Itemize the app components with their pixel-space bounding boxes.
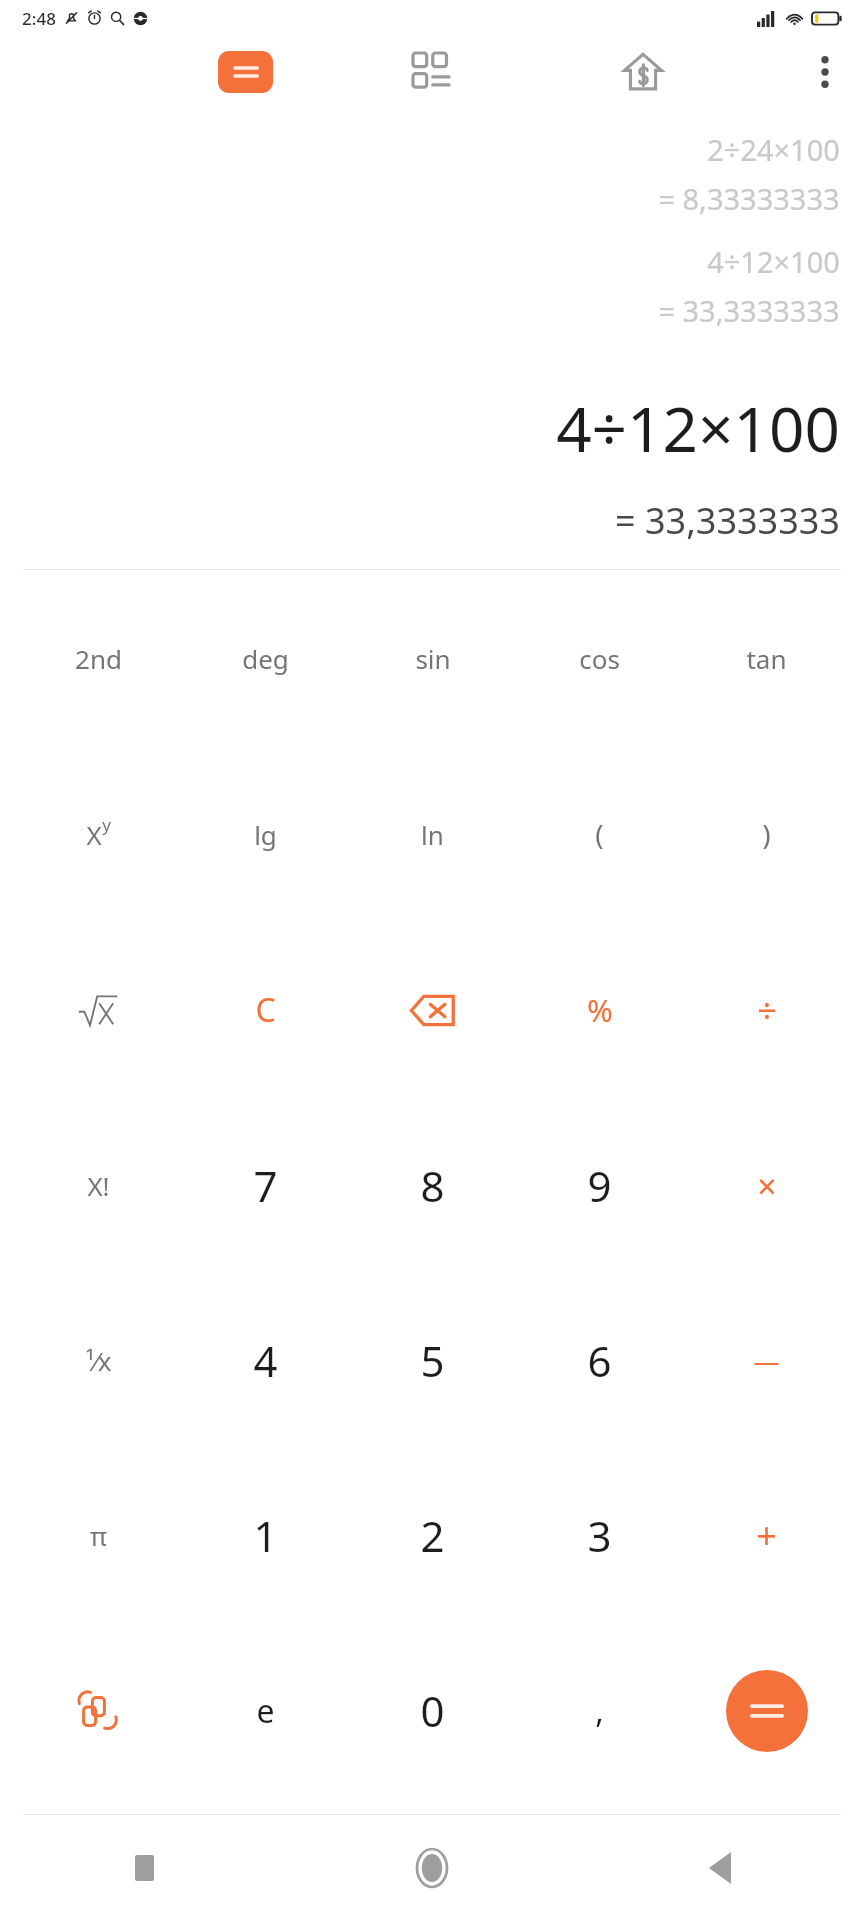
button[interactable]: π [14, 1448, 182, 1623]
staticText: 7 [253, 1157, 278, 1214]
button[interactable]: 6 [516, 1273, 683, 1448]
staticText: + [756, 1511, 777, 1560]
button[interactable]: cos [516, 570, 683, 746]
staticText: , [595, 1689, 604, 1733]
staticText: 5 [420, 1332, 445, 1389]
staticText: 2 [420, 1507, 445, 1564]
staticText: C [255, 988, 276, 1032]
button[interactable]: 5 [349, 1273, 516, 1448]
button[interactable]: Backspace [349, 922, 516, 1098]
button[interactable]: deg [182, 570, 349, 746]
staticText: % [587, 989, 613, 1031]
button[interactable]: ) [683, 746, 850, 922]
staticText: 2nd [75, 641, 122, 676]
button[interactable]: , [516, 1623, 683, 1798]
staticText: cos [579, 641, 620, 676]
staticText: y [102, 813, 111, 836]
staticText: tan [746, 641, 787, 676]
button[interactable]: 8 [349, 1098, 516, 1273]
button[interactable]: Home [288, 1815, 576, 1920]
staticText: — [753, 1343, 780, 1378]
button[interactable]: e [182, 1623, 349, 1798]
button[interactable]: 2nd [14, 570, 182, 746]
staticText: ÷ [757, 987, 777, 1033]
button[interactable]: 0 [349, 1623, 516, 1798]
button[interactable]: X! [14, 1098, 182, 1273]
button[interactable]: + [683, 1448, 850, 1623]
staticText: = 33,3333333 [658, 291, 840, 330]
staticText: 3 [587, 1507, 612, 1564]
button[interactable]: 2 [349, 1448, 516, 1623]
button[interactable]: 7 [182, 1098, 349, 1273]
staticText: 6 [587, 1332, 612, 1389]
button[interactable]: tan [683, 570, 850, 746]
button[interactable]: ¹⁄x [14, 1273, 182, 1448]
staticText: × [757, 1163, 777, 1209]
staticText: X! [87, 1168, 110, 1203]
staticText: 2:48 [22, 7, 56, 30]
button[interactable]: × [683, 1098, 850, 1273]
button[interactable]: 4 [182, 1273, 349, 1448]
button[interactable]: 3 [516, 1448, 683, 1623]
button[interactable]: ( [516, 746, 683, 922]
staticText: 4÷12×100 [556, 386, 840, 470]
button[interactable]: Back [576, 1815, 864, 1920]
staticText: 8 [420, 1157, 445, 1214]
button[interactable]: — [683, 1273, 850, 1448]
button[interactable]: % [516, 922, 683, 1098]
button[interactable]: Calculator [218, 51, 273, 93]
staticText: 1 [253, 1507, 278, 1564]
button[interactable]: C [182, 922, 349, 1098]
staticText: ¹⁄x [85, 1343, 112, 1378]
staticText: lg [254, 817, 277, 852]
staticText: 9 [587, 1157, 612, 1214]
staticText: 4 [253, 1332, 278, 1389]
staticText: 4÷12×100 [707, 242, 840, 281]
button[interactable]: More options [798, 45, 852, 99]
button[interactable]: Mortgage [615, 44, 671, 100]
button[interactable]: Unit converter [405, 45, 459, 99]
button[interactable]: Recent apps [0, 1815, 288, 1920]
button[interactable]: sin [349, 570, 516, 746]
button[interactable]: ln [349, 746, 516, 922]
staticText: 2÷24×100 [707, 130, 840, 169]
staticText: e [256, 1689, 275, 1733]
button[interactable]: lg [182, 746, 349, 922]
button[interactable]: Equals [726, 1670, 808, 1752]
button[interactable]: ÷ [683, 922, 850, 1098]
button[interactable]: 9 [516, 1098, 683, 1273]
staticText: 0 [420, 1682, 445, 1739]
staticText: X [86, 817, 102, 852]
button[interactable]: 1 [182, 1448, 349, 1623]
button[interactable]: Square root [14, 922, 182, 1098]
button[interactable]: X [14, 746, 182, 922]
staticText: ( [595, 815, 604, 853]
staticText: π [90, 1518, 107, 1553]
staticText: ln [421, 817, 444, 852]
staticText: ) [762, 815, 771, 853]
staticText: deg [242, 641, 289, 676]
staticText: sin [415, 641, 451, 676]
button[interactable]: Convert [14, 1623, 182, 1798]
staticText: = 8,33333333 [658, 179, 840, 218]
staticText: = 33,3333333 [615, 496, 840, 545]
